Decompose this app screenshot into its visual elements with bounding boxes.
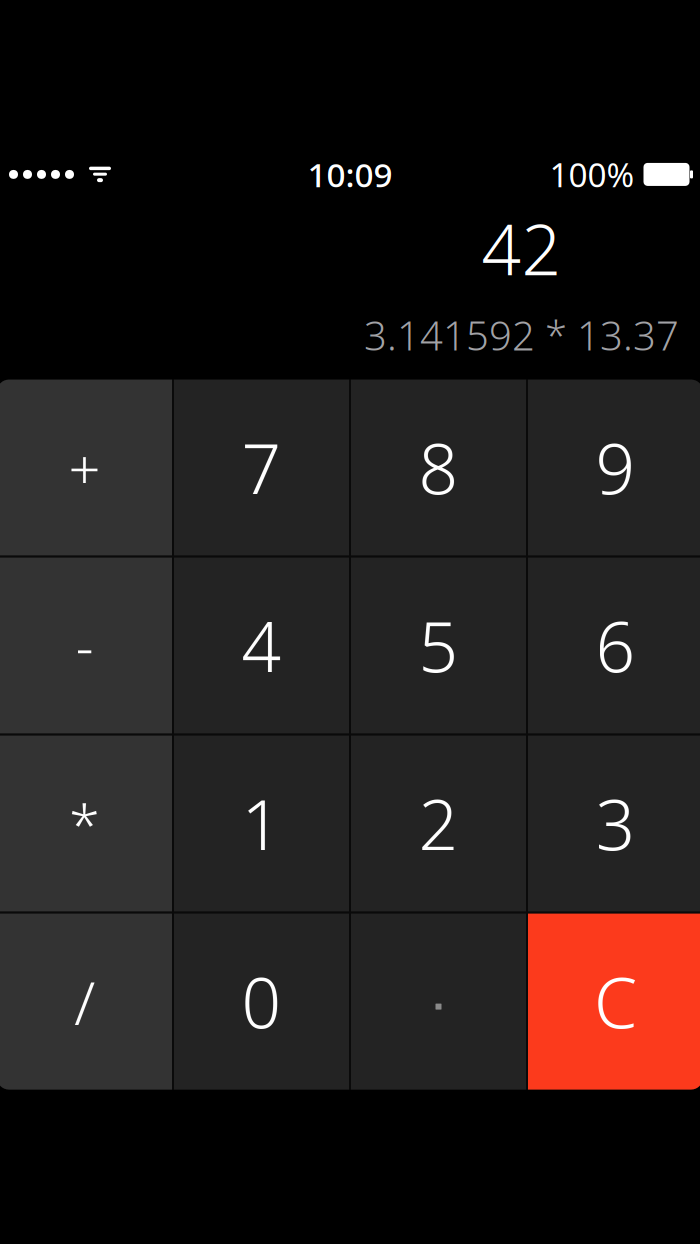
button[interactable]: Decimal point bbox=[351, 914, 526, 1090]
button[interactable]: 8 bbox=[351, 380, 526, 556]
button[interactable]: 9 bbox=[528, 380, 700, 556]
button[interactable]: 7 bbox=[174, 380, 349, 556]
button[interactable]: 6 bbox=[528, 558, 700, 734]
staticText: C bbox=[594, 956, 637, 1048]
button[interactable]: / bbox=[0, 914, 172, 1090]
staticText: 0 bbox=[241, 956, 281, 1048]
staticText: 6 bbox=[595, 600, 635, 692]
staticText: 4 bbox=[241, 600, 281, 692]
button[interactable]: C bbox=[528, 914, 700, 1090]
staticText: 9 bbox=[595, 422, 635, 514]
staticText: / bbox=[74, 961, 95, 1042]
staticText: 3.141592 * 13.37 bbox=[364, 308, 679, 362]
staticText: 42 bbox=[481, 202, 561, 294]
staticText: 2 bbox=[418, 778, 458, 870]
staticText: 8 bbox=[418, 422, 458, 514]
button[interactable]: - bbox=[0, 558, 172, 734]
staticText: + bbox=[68, 430, 100, 505]
button[interactable]: * bbox=[0, 736, 172, 912]
button[interactable]: 0 bbox=[174, 914, 349, 1090]
button[interactable]: + bbox=[0, 380, 172, 556]
staticText: 10:09 bbox=[307, 152, 392, 197]
staticText: * bbox=[69, 786, 100, 861]
staticText: - bbox=[75, 608, 93, 683]
button[interactable]: 4 bbox=[174, 558, 349, 734]
staticText: 7 bbox=[241, 422, 281, 514]
button[interactable]: 2 bbox=[351, 736, 526, 912]
button[interactable]: 3 bbox=[528, 736, 700, 912]
staticText: 3 bbox=[595, 778, 635, 870]
button[interactable]: 1 bbox=[174, 736, 349, 912]
button[interactable]: 5 bbox=[351, 558, 526, 734]
staticText: 5 bbox=[418, 600, 458, 692]
staticText: 1 bbox=[241, 778, 281, 870]
staticText: 100% bbox=[549, 152, 634, 197]
